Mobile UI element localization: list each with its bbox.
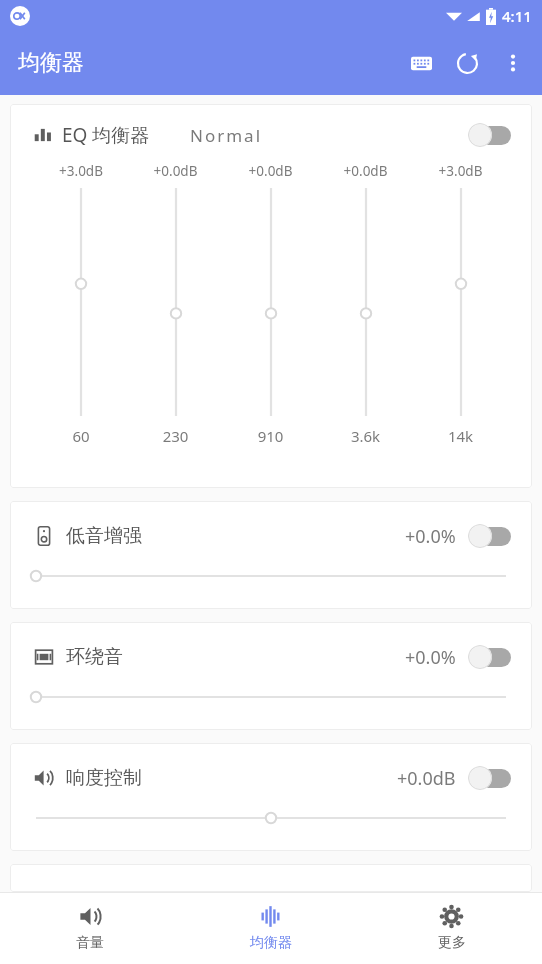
button[interactable]: EQ 均衡器 <box>10 104 532 488</box>
staticText: 4:11 <box>502 6 532 26</box>
staticText: +3.0dB <box>413 162 508 180</box>
staticText: +0.0% <box>405 645 456 670</box>
button[interactable]: Toggle <box>468 122 514 148</box>
button[interactable]: 低音增强 <box>10 501 532 609</box>
staticText: 响度控制 <box>66 766 142 790</box>
button[interactable]: Toggle <box>468 644 514 670</box>
staticText: 3.6k <box>318 426 413 446</box>
staticText: 低音增强 <box>66 524 142 548</box>
button[interactable]: 均衡器 <box>180 893 361 964</box>
button[interactable]: 更多 <box>361 893 542 964</box>
staticText: 14k <box>413 426 508 446</box>
button[interactable]: Refresh <box>444 40 490 86</box>
staticText: +0.0% <box>405 524 456 549</box>
staticText: 音量 <box>76 934 104 952</box>
staticText: +0.0dB <box>397 766 456 791</box>
staticText: 环绕音 <box>66 645 123 669</box>
staticText: +0.0dB <box>223 162 318 180</box>
staticText: 均衡器 <box>18 49 84 77</box>
button[interactable]: More options <box>490 40 536 86</box>
staticText: EQ 均衡器 <box>62 122 150 148</box>
staticText: 60 <box>34 426 128 446</box>
button[interactable]: 环绕音 <box>10 622 532 730</box>
staticText: +0.0dB <box>128 162 223 180</box>
staticText: +0.0dB <box>318 162 413 180</box>
button[interactable]: Toggle <box>468 523 514 549</box>
button[interactable]: Toggle <box>468 765 514 791</box>
button[interactable]: 音量 <box>0 893 180 964</box>
staticText: 910 <box>223 426 318 446</box>
staticText: Normal <box>190 124 263 147</box>
staticText: +3.0dB <box>34 162 128 180</box>
staticText: 230 <box>128 426 223 446</box>
button[interactable]: Keyboard <box>398 40 444 86</box>
button[interactable]: 响度控制 <box>10 743 532 851</box>
staticText: 均衡器 <box>250 934 292 952</box>
staticText: 更多 <box>438 934 466 952</box>
